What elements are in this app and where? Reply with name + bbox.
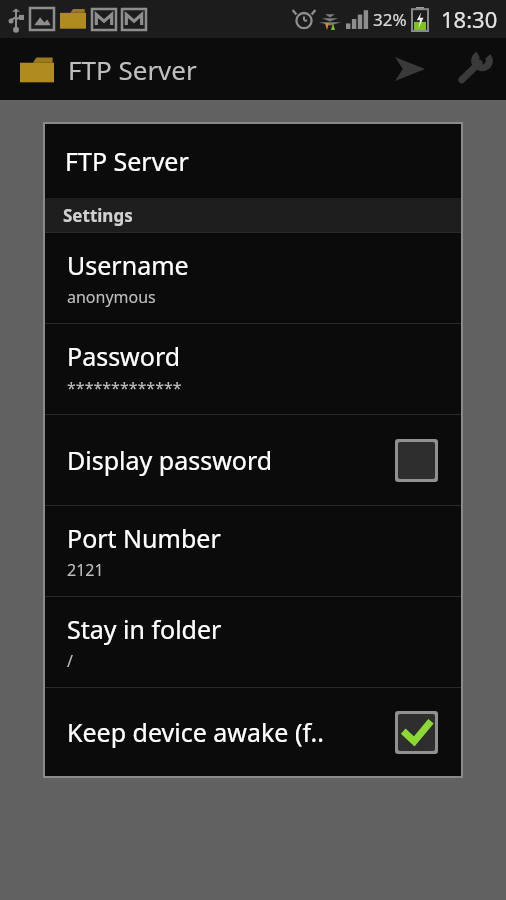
staticText: FTP Server: [68, 52, 197, 87]
button[interactable]: Stay in folder: [45, 597, 461, 687]
button[interactable]: Share: [378, 38, 442, 100]
staticText: 18:30: [441, 4, 498, 34]
staticText: /192.168.62.23:2121/: [88, 362, 344, 397]
button[interactable]: Display password: [45, 415, 461, 505]
staticText: /: [67, 650, 73, 672]
staticText: *************: [67, 377, 182, 399]
staticText: FTP running at ftp:/: [108, 323, 345, 358]
button[interactable]: Password: [45, 324, 461, 414]
staticText: Port Number: [67, 521, 221, 555]
staticText: Stay in folder: [67, 612, 222, 646]
staticText: Username: [67, 248, 189, 282]
button[interactable]: Username: [45, 233, 461, 323]
button[interactable]: Port Number: [45, 506, 461, 596]
staticText: 32%: [373, 8, 407, 31]
staticText: Display password: [67, 443, 395, 477]
staticText: anonymous: [67, 286, 156, 308]
staticText: 2121: [67, 559, 104, 581]
staticText: Settings: [63, 204, 133, 227]
staticText: FTP Server: [65, 144, 189, 178]
button[interactable]: Settings: [442, 38, 506, 100]
button[interactable]: Keep device awake (f..: [45, 688, 461, 776]
staticText: Keep device awake (f..: [67, 715, 395, 749]
staticText: Password: [67, 339, 181, 373]
